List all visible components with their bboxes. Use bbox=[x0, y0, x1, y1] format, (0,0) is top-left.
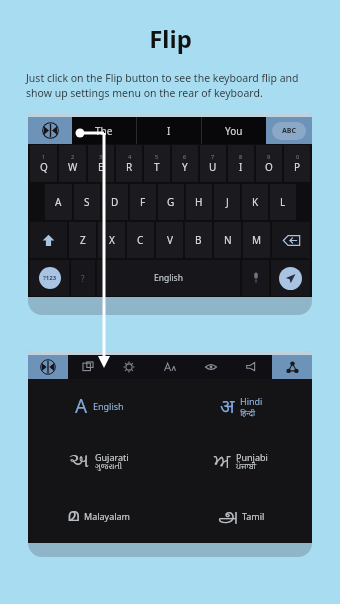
button[interactable]: B bbox=[185, 222, 212, 258]
button[interactable]: 4 bbox=[116, 145, 142, 182]
button[interactable]: ? bbox=[71, 260, 95, 296]
staticText: R bbox=[126, 160, 133, 174]
staticText: L bbox=[280, 195, 286, 209]
staticText: Q bbox=[40, 160, 48, 174]
button[interactable]: A bbox=[28, 379, 170, 433]
button[interactable]: 8 bbox=[228, 145, 254, 182]
staticText: മ bbox=[67, 506, 79, 525]
button[interactable]: Symbols bbox=[30, 260, 69, 296]
button[interactable]: अ bbox=[170, 379, 312, 433]
button[interactable]: X bbox=[98, 222, 125, 258]
staticText: U bbox=[209, 160, 217, 174]
staticText: T bbox=[154, 160, 160, 174]
button[interactable]: அ bbox=[170, 488, 312, 543]
staticText: ਪੰਜਾਬੀ bbox=[236, 463, 257, 471]
staticText: Tamil bbox=[242, 510, 265, 522]
staticText: ?123 bbox=[43, 274, 57, 282]
staticText: V bbox=[167, 233, 173, 247]
staticText: Gujarati bbox=[95, 451, 129, 463]
staticText: அ bbox=[217, 506, 237, 525]
button[interactable]: Preview bbox=[190, 355, 231, 379]
button[interactable]: Z bbox=[69, 222, 96, 258]
staticText: C bbox=[137, 233, 144, 247]
staticText: Hindi bbox=[240, 395, 263, 407]
button[interactable]: 6 bbox=[172, 145, 198, 182]
staticText: English bbox=[154, 272, 183, 284]
button[interactable]: 3 bbox=[88, 145, 114, 182]
staticText: Just click on the Flip button to see the… bbox=[26, 71, 314, 100]
button[interactable]: Send bbox=[271, 260, 310, 296]
button[interactable]: ਅ bbox=[170, 433, 312, 488]
button[interactable]: L bbox=[270, 184, 296, 220]
button[interactable]: The bbox=[72, 117, 136, 144]
staticText: ? bbox=[81, 273, 85, 284]
staticText: 7 bbox=[211, 153, 215, 160]
button[interactable]: Shift bbox=[30, 222, 67, 258]
button[interactable]: Backspace bbox=[272, 222, 310, 258]
button[interactable]: 2 bbox=[59, 145, 86, 182]
button[interactable]: You bbox=[202, 117, 266, 144]
staticText: 6 bbox=[183, 153, 187, 160]
button[interactable]: H bbox=[186, 184, 212, 220]
staticText: Malayalam bbox=[84, 510, 131, 522]
button[interactable]: ABC bbox=[266, 117, 312, 144]
staticText: 5 bbox=[155, 153, 159, 160]
staticText: A bbox=[55, 195, 62, 209]
button[interactable]: Settings bbox=[108, 355, 149, 379]
staticText: K bbox=[252, 195, 259, 209]
staticText: H bbox=[195, 195, 203, 209]
button[interactable]: Flip keyboard bbox=[28, 117, 72, 144]
staticText: English bbox=[93, 400, 124, 412]
staticText: 0 bbox=[296, 153, 300, 160]
staticText: 4 bbox=[128, 153, 132, 160]
staticText: 2 bbox=[71, 153, 75, 160]
button[interactable]: 1 bbox=[30, 145, 57, 182]
button[interactable]: A bbox=[45, 184, 72, 220]
staticText: Punjabi bbox=[236, 451, 268, 463]
button[interactable]: 5 bbox=[144, 145, 170, 182]
staticText: A bbox=[75, 393, 88, 419]
staticText: अ bbox=[220, 393, 235, 419]
staticText: I bbox=[239, 160, 243, 174]
staticText: અ bbox=[69, 452, 90, 471]
button[interactable]: മ bbox=[28, 488, 170, 543]
button[interactable]: Sound bbox=[231, 355, 272, 379]
button[interactable]: I bbox=[137, 117, 201, 144]
staticText: W bbox=[68, 160, 78, 174]
staticText: ਅ bbox=[214, 452, 231, 471]
button[interactable]: C bbox=[127, 222, 154, 258]
staticText: 9 bbox=[267, 153, 271, 160]
button[interactable]: N bbox=[214, 222, 241, 258]
button[interactable]: S bbox=[74, 184, 100, 220]
staticText: G bbox=[167, 195, 175, 209]
button[interactable]: G bbox=[158, 184, 184, 220]
button[interactable]: D bbox=[102, 184, 128, 220]
button[interactable]: Layout bbox=[68, 355, 108, 379]
button[interactable]: Share bbox=[272, 355, 312, 379]
staticText: हिन्दी bbox=[240, 407, 256, 418]
button[interactable]: F bbox=[130, 184, 156, 220]
button[interactable]: 7 bbox=[200, 145, 226, 182]
button[interactable]: 9 bbox=[256, 145, 282, 182]
button[interactable]: M bbox=[243, 222, 270, 258]
button[interactable]: અ bbox=[28, 433, 170, 488]
staticText: 3 bbox=[99, 153, 103, 160]
staticText: P bbox=[294, 160, 301, 174]
button[interactable]: English bbox=[97, 260, 240, 296]
button[interactable]: 0 bbox=[284, 145, 310, 182]
button[interactable]: V bbox=[156, 222, 183, 258]
button[interactable]: J bbox=[214, 184, 240, 220]
staticText: O bbox=[265, 160, 273, 174]
staticText: M bbox=[252, 233, 262, 247]
staticText: E bbox=[98, 160, 104, 174]
staticText: X bbox=[109, 233, 115, 247]
staticText: B bbox=[195, 233, 202, 247]
button[interactable]: K bbox=[242, 184, 268, 220]
staticText: Flip bbox=[149, 22, 192, 55]
staticText: ABC bbox=[282, 126, 296, 136]
staticText: Z bbox=[80, 233, 86, 247]
button[interactable]: Flip keyboard bbox=[28, 355, 68, 379]
button[interactable]: Voice input bbox=[242, 260, 269, 296]
button[interactable]: Text size bbox=[149, 355, 190, 379]
staticText: I bbox=[167, 124, 171, 138]
